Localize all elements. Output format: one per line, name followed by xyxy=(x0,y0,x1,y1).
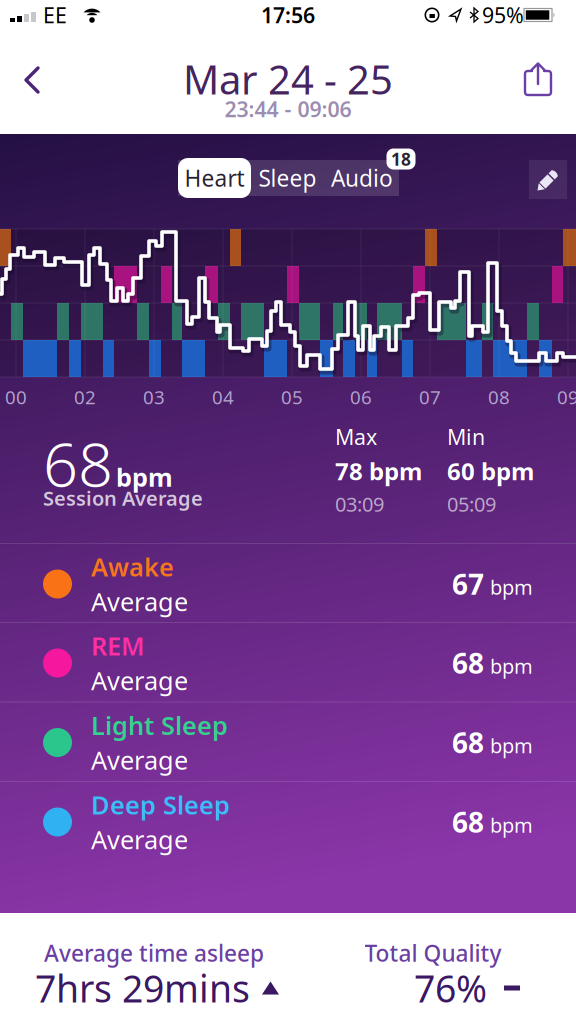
staticText: Light Sleep xyxy=(91,708,228,742)
staticText: 60 bpm xyxy=(447,455,534,487)
staticText: EE xyxy=(43,1,67,29)
staticText: Awake xyxy=(91,550,174,583)
button[interactable]: Deep Sleep xyxy=(43,783,533,861)
staticText: Average xyxy=(91,743,188,777)
button[interactable]: REM xyxy=(43,624,533,702)
staticText: 68 xyxy=(452,724,484,761)
staticText: Heart xyxy=(184,163,244,193)
staticText: bpm xyxy=(490,812,533,838)
staticText: bpm xyxy=(490,653,533,679)
staticText: Average time asleep xyxy=(44,938,264,968)
staticText: 95% xyxy=(482,1,524,29)
staticText: 78 bpm xyxy=(335,455,422,487)
staticText: 68 xyxy=(43,422,113,504)
staticText: bpm xyxy=(116,460,173,494)
staticText: Audio xyxy=(331,163,393,193)
staticText: Average xyxy=(91,822,188,856)
button[interactable]: Heart xyxy=(178,158,251,198)
staticText: Average xyxy=(91,584,188,618)
staticText: Sleep xyxy=(258,163,316,193)
staticText: 76% xyxy=(414,963,487,1013)
staticText: 03 xyxy=(143,385,165,409)
staticText: 06 xyxy=(350,385,372,409)
button[interactable]: Audio xyxy=(327,160,397,196)
staticText: 68 xyxy=(452,803,484,841)
staticText: bpm xyxy=(490,732,533,759)
staticText: bpm xyxy=(490,574,533,600)
button[interactable]: Back xyxy=(12,54,56,106)
staticText: Deep Sleep xyxy=(91,788,230,821)
staticText: 7hrs 29mins xyxy=(35,963,250,1013)
button[interactable]: Edit xyxy=(529,160,567,199)
staticText: Average xyxy=(91,663,188,697)
button[interactable]: Share xyxy=(514,52,562,106)
button[interactable]: Awake xyxy=(43,545,533,623)
button[interactable]: Sleep xyxy=(254,160,320,196)
staticText: Session Average xyxy=(43,485,203,511)
staticText: 09 xyxy=(557,385,576,409)
staticText: 18 xyxy=(391,147,411,170)
button[interactable]: Light Sleep xyxy=(43,703,533,781)
staticText: 03:09 xyxy=(335,491,384,517)
staticText: 17:56 xyxy=(261,1,315,29)
staticText: 07 xyxy=(419,385,441,409)
staticText: 67 xyxy=(452,565,484,603)
staticText: 23:44 - 09:06 xyxy=(224,95,351,123)
staticText: Min xyxy=(447,423,485,451)
staticText: Total Quality xyxy=(364,938,501,968)
staticText: 05 xyxy=(281,385,303,409)
staticText: Mar 24 - 25 xyxy=(183,52,393,105)
staticText: 04 xyxy=(212,385,234,409)
staticText: 05:09 xyxy=(447,491,496,517)
staticText: REM xyxy=(91,629,145,662)
staticText: Max xyxy=(335,423,377,451)
staticText: 02 xyxy=(74,385,96,409)
staticText: 00 xyxy=(5,385,27,409)
staticText: 68 xyxy=(452,644,484,682)
staticText: 08 xyxy=(488,385,510,409)
